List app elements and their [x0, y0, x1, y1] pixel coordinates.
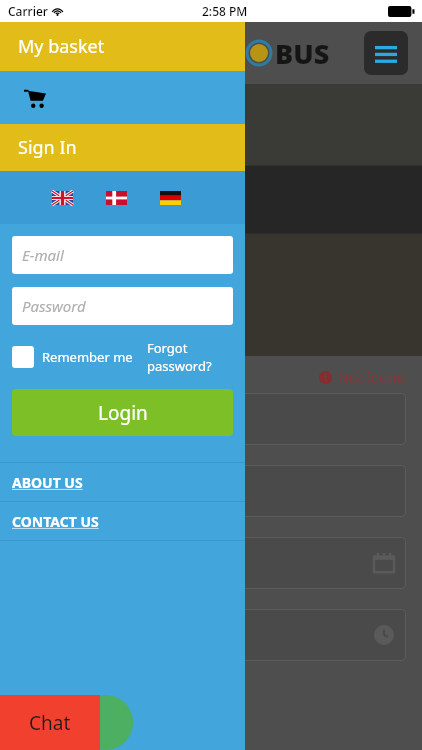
- button[interactable]: Chat: [0, 695, 100, 750]
- button[interactable]: [160, 191, 181, 205]
- staticText: 2:58 PM: [202, 3, 248, 19]
- button[interactable]: Password: [12, 287, 233, 325]
- button[interactable]: Forgot password?: [147, 339, 233, 375]
- staticText: Password: [22, 296, 86, 316]
- button[interactable]: To place: [16, 465, 406, 517]
- button[interactable]: Time: [16, 609, 406, 661]
- staticText: To place: [28, 481, 86, 501]
- button[interactable]: E-mail: [12, 236, 233, 274]
- staticText: From place: [28, 409, 106, 429]
- button[interactable]: From place: [16, 393, 406, 445]
- button[interactable]: Date: [16, 537, 406, 589]
- staticText: BUS: [275, 35, 330, 72]
- button[interactable]: Basket: [0, 71, 245, 124]
- staticText: Carrier: [8, 3, 48, 19]
- button[interactable]: ABOUT US: [0, 463, 245, 501]
- staticText: Find buses at: [18, 106, 215, 147]
- button[interactable]: Remember me checkbox: [12, 346, 34, 368]
- button[interactable]: My basket: [0, 22, 245, 71]
- staticText: E-mail: [22, 245, 64, 265]
- staticText: Chat: [29, 710, 71, 736]
- button[interactable]: CONTACT US: [0, 502, 245, 540]
- staticText: CONTACT US: [12, 512, 99, 531]
- staticText: cheap price s,: [18, 147, 222, 188]
- staticText: compare prices instantly.: [18, 220, 218, 243]
- button[interactable]: Remember me: [42, 348, 133, 366]
- staticText: ABOUT US: [12, 473, 83, 492]
- staticText: Sign In: [18, 135, 77, 160]
- staticText: My basket: [18, 34, 105, 59]
- staticText: Not found: [338, 368, 406, 387]
- button[interactable]: [106, 191, 127, 205]
- staticText: Login: [98, 400, 148, 426]
- button[interactable]: [52, 191, 73, 205]
- button[interactable]: Sign In: [0, 124, 245, 171]
- button[interactable]: Login: [12, 389, 233, 436]
- button[interactable]: Menu: [364, 31, 408, 75]
